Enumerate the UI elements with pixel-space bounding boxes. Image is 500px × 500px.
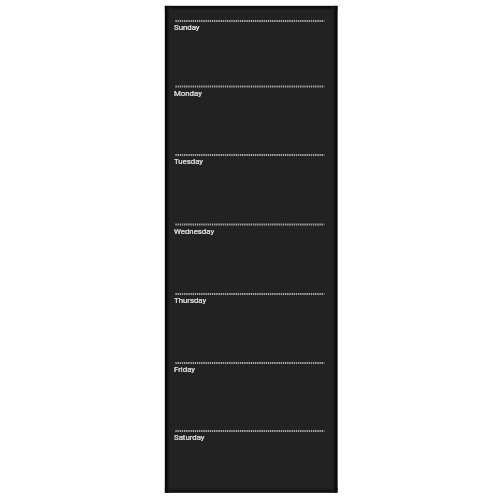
staticText: Tuesday: [174, 157, 204, 166]
staticText: Sunday: [174, 23, 200, 32]
button[interactable]: Friday: [165, 363, 338, 431]
button[interactable]: Tuesday: [165, 155, 338, 223]
button[interactable]: Saturday: [165, 431, 338, 493]
staticText: Wednesday: [174, 227, 215, 236]
staticText: Friday: [174, 365, 196, 374]
button[interactable]: Monday: [165, 87, 338, 155]
button[interactable]: Wednesday: [165, 225, 338, 293]
button[interactable]: Thursday: [165, 294, 338, 362]
staticText: Saturday: [174, 433, 205, 442]
staticText: Monday: [174, 89, 202, 98]
staticText: Thursday: [174, 296, 207, 305]
button[interactable]: Sunday: [165, 21, 338, 89]
